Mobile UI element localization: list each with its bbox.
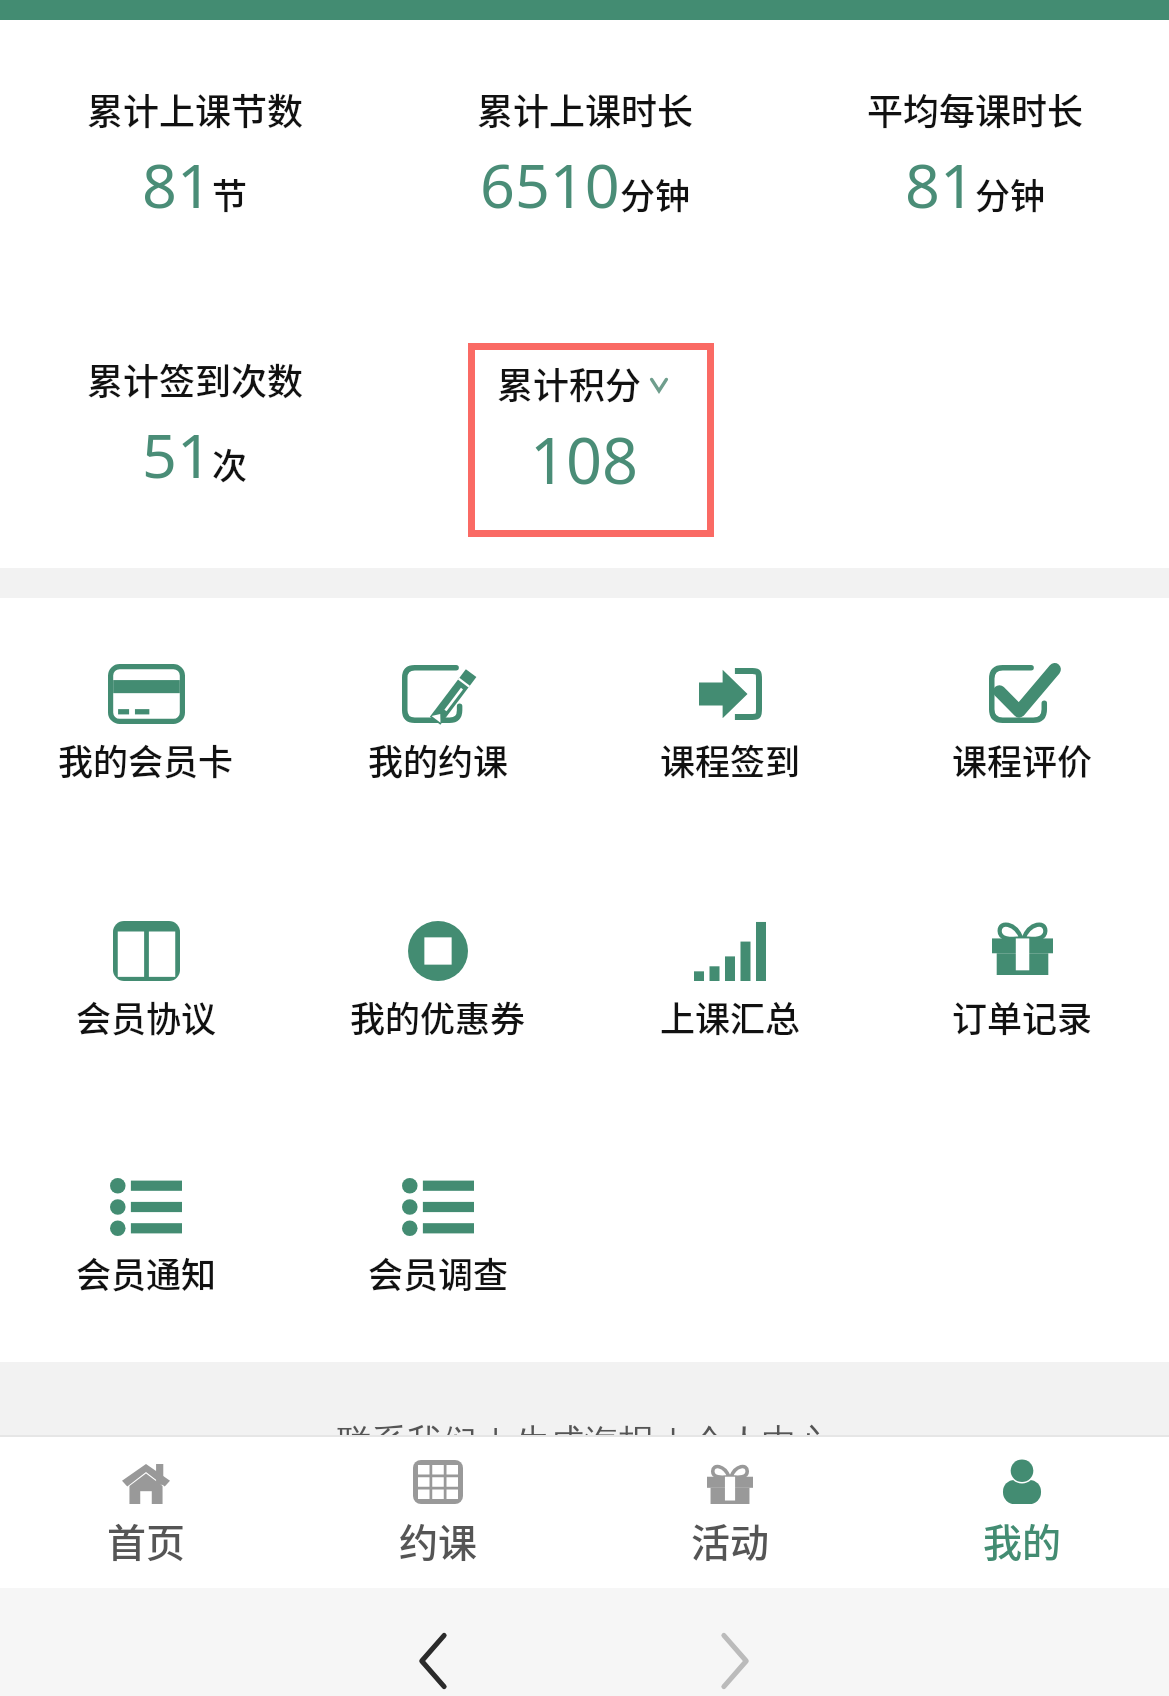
- button[interactable]: [584, 1435, 876, 1587]
- staticText: 51: [142, 413, 212, 496]
- staticText: 会员协议: [76, 991, 217, 1042]
- staticText: 我的: [983, 1512, 1062, 1568]
- button[interactable]: [0, 75, 390, 185]
- button[interactable]: [292, 1155, 584, 1325]
- staticText: 会员调查: [368, 1247, 509, 1298]
- button[interactable]: [876, 899, 1168, 1069]
- staticText: 累计上课时长: [477, 83, 694, 135]
- staticText: 平均每课时长: [867, 83, 1084, 135]
- button[interactable]: [390, 75, 780, 185]
- staticText: 节: [212, 168, 248, 219]
- staticText: 联系我们 | 生成海报 | 个人中心: [337, 1417, 832, 1435]
- staticText: 会员通知: [76, 1247, 217, 1298]
- button[interactable]: [780, 75, 1169, 185]
- button[interactable]: Back: [399, 1626, 469, 1696]
- staticText: 首页: [107, 1512, 186, 1568]
- staticText: 6510: [480, 143, 620, 226]
- staticText: 我的约课: [368, 734, 509, 785]
- staticText: 我的会员卡: [58, 734, 234, 785]
- staticText: 活动: [691, 1512, 770, 1568]
- staticText: 次: [212, 438, 248, 489]
- staticText: 课程评价: [952, 734, 1093, 785]
- staticText: 分钟: [620, 168, 691, 219]
- staticText: 我的优惠券: [350, 991, 526, 1042]
- button[interactable]: [0, 899, 292, 1069]
- button[interactable]: [584, 642, 876, 812]
- staticText: 分钟: [975, 168, 1046, 219]
- staticText: 累计积分: [497, 357, 642, 409]
- staticText: 81: [142, 143, 212, 226]
- button[interactable]: [0, 1155, 292, 1325]
- button[interactable]: [292, 899, 584, 1069]
- staticText: 81: [905, 143, 975, 226]
- button[interactable]: Forward: [699, 1626, 769, 1696]
- button[interactable]: [0, 642, 292, 812]
- staticText: 上课汇总: [660, 991, 801, 1042]
- staticText: 订单记录: [952, 991, 1093, 1042]
- button[interactable]: [292, 642, 584, 812]
- staticText: 108: [530, 417, 639, 503]
- button[interactable]: [0, 1435, 292, 1587]
- staticText: 累计上课节数: [87, 83, 304, 135]
- button[interactable]: [584, 899, 876, 1069]
- button[interactable]: [876, 1435, 1168, 1587]
- button[interactable]: [475, 350, 707, 530]
- button[interactable]: [0, 345, 390, 455]
- staticText: 课程签到: [660, 734, 801, 785]
- staticText: 约课: [399, 1512, 478, 1568]
- staticText: 累计签到次数: [87, 353, 304, 405]
- button[interactable]: [876, 642, 1168, 812]
- button[interactable]: [292, 1435, 584, 1587]
